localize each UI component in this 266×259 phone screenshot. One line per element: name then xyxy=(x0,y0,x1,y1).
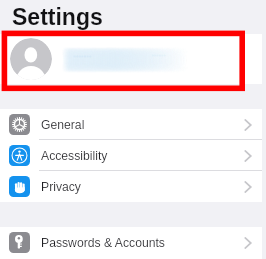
staticText: Accessibility xyxy=(41,149,108,163)
staticText: Privacy xyxy=(41,180,81,194)
staticText: Passwords & Accounts xyxy=(41,236,165,250)
button[interactable] xyxy=(0,34,262,84)
button[interactable]: Privacy xyxy=(0,171,262,202)
button[interactable]: General xyxy=(0,109,262,140)
staticText: Settings xyxy=(12,4,103,30)
staticText: General xyxy=(41,118,85,132)
button[interactable]: Accessibility xyxy=(0,140,262,171)
button[interactable]: Passwords & Accounts xyxy=(0,227,262,258)
